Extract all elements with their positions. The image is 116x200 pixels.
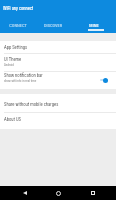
staticText: CONNECT: [9, 23, 27, 28]
staticText: Show notification bar: [4, 72, 43, 78]
button[interactable]: Recent apps: [86, 186, 100, 200]
staticText: UI Theme: [4, 56, 22, 62]
staticText: About US: [4, 116, 21, 122]
staticText: App Settings: [4, 45, 28, 50]
staticText: Share without mobile charges: [4, 101, 59, 107]
button[interactable]: UI Theme: [0, 55, 116, 73]
button[interactable]: About US: [0, 112, 116, 129]
button[interactable]: Back: [18, 186, 32, 200]
staticText: Android: [4, 62, 14, 67]
button[interactable]: Share without mobile charges: [0, 94, 116, 112]
staticText: WiFi any connect: [3, 6, 34, 11]
staticText: DISCOVER: [44, 23, 62, 28]
button[interactable]: CONNECT: [0, 18, 37, 33]
button[interactable]: Show notification bar: [0, 71, 116, 89]
button[interactable]: DISCOVER: [34, 18, 72, 33]
button[interactable]: MINE: [75, 18, 113, 33]
button[interactable]: Home: [51, 186, 65, 200]
staticText: MINE: [89, 23, 99, 28]
staticText: show wifi info in real time: [4, 78, 37, 83]
